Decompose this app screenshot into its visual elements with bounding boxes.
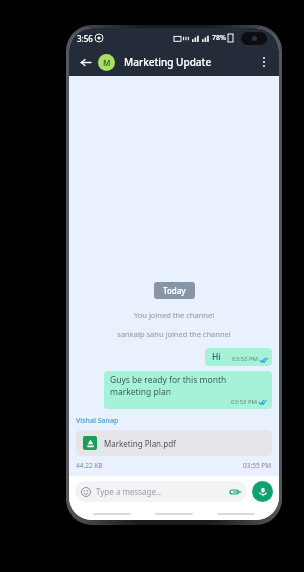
staticText: M	[103, 57, 111, 68]
button[interactable]: Record voice message	[252, 481, 273, 502]
button[interactable]: Emoji	[75, 481, 247, 502]
staticText: 44.22 KB	[76, 461, 103, 470]
staticText: 3:56	[77, 33, 93, 44]
button[interactable]: Back	[75, 52, 95, 72]
button[interactable]: Guys be ready for this month marketing p…	[104, 371, 272, 409]
button[interactable]: M	[98, 54, 115, 71]
staticText: 03:53 PM	[231, 398, 257, 406]
staticText: 03:55 PM	[243, 461, 272, 470]
staticText: Marketing Plan.pdf	[104, 438, 176, 449]
staticText: 03:52 PM	[232, 355, 258, 363]
staticText: 78%	[212, 33, 226, 43]
button[interactable]: More options	[255, 53, 273, 71]
staticText: Vishal Sanap	[76, 416, 119, 426]
staticText: sankalp sahu joined the channel	[76, 329, 272, 339]
button[interactable]: Today	[163, 285, 186, 296]
staticText: Marketing Update	[124, 55, 212, 69]
staticText: Type a message...	[96, 486, 163, 497]
staticText: Guys be ready for this month marketing p…	[110, 374, 267, 398]
other: Emoji	[81, 487, 91, 497]
staticText: Today	[163, 285, 186, 296]
button[interactable]: Marketing Plan.pdf	[76, 430, 272, 456]
staticText: Hi	[212, 351, 221, 363]
other: Attach	[230, 488, 241, 496]
button[interactable]: Hi	[205, 348, 272, 366]
staticText: You joined the channel	[76, 310, 272, 320]
